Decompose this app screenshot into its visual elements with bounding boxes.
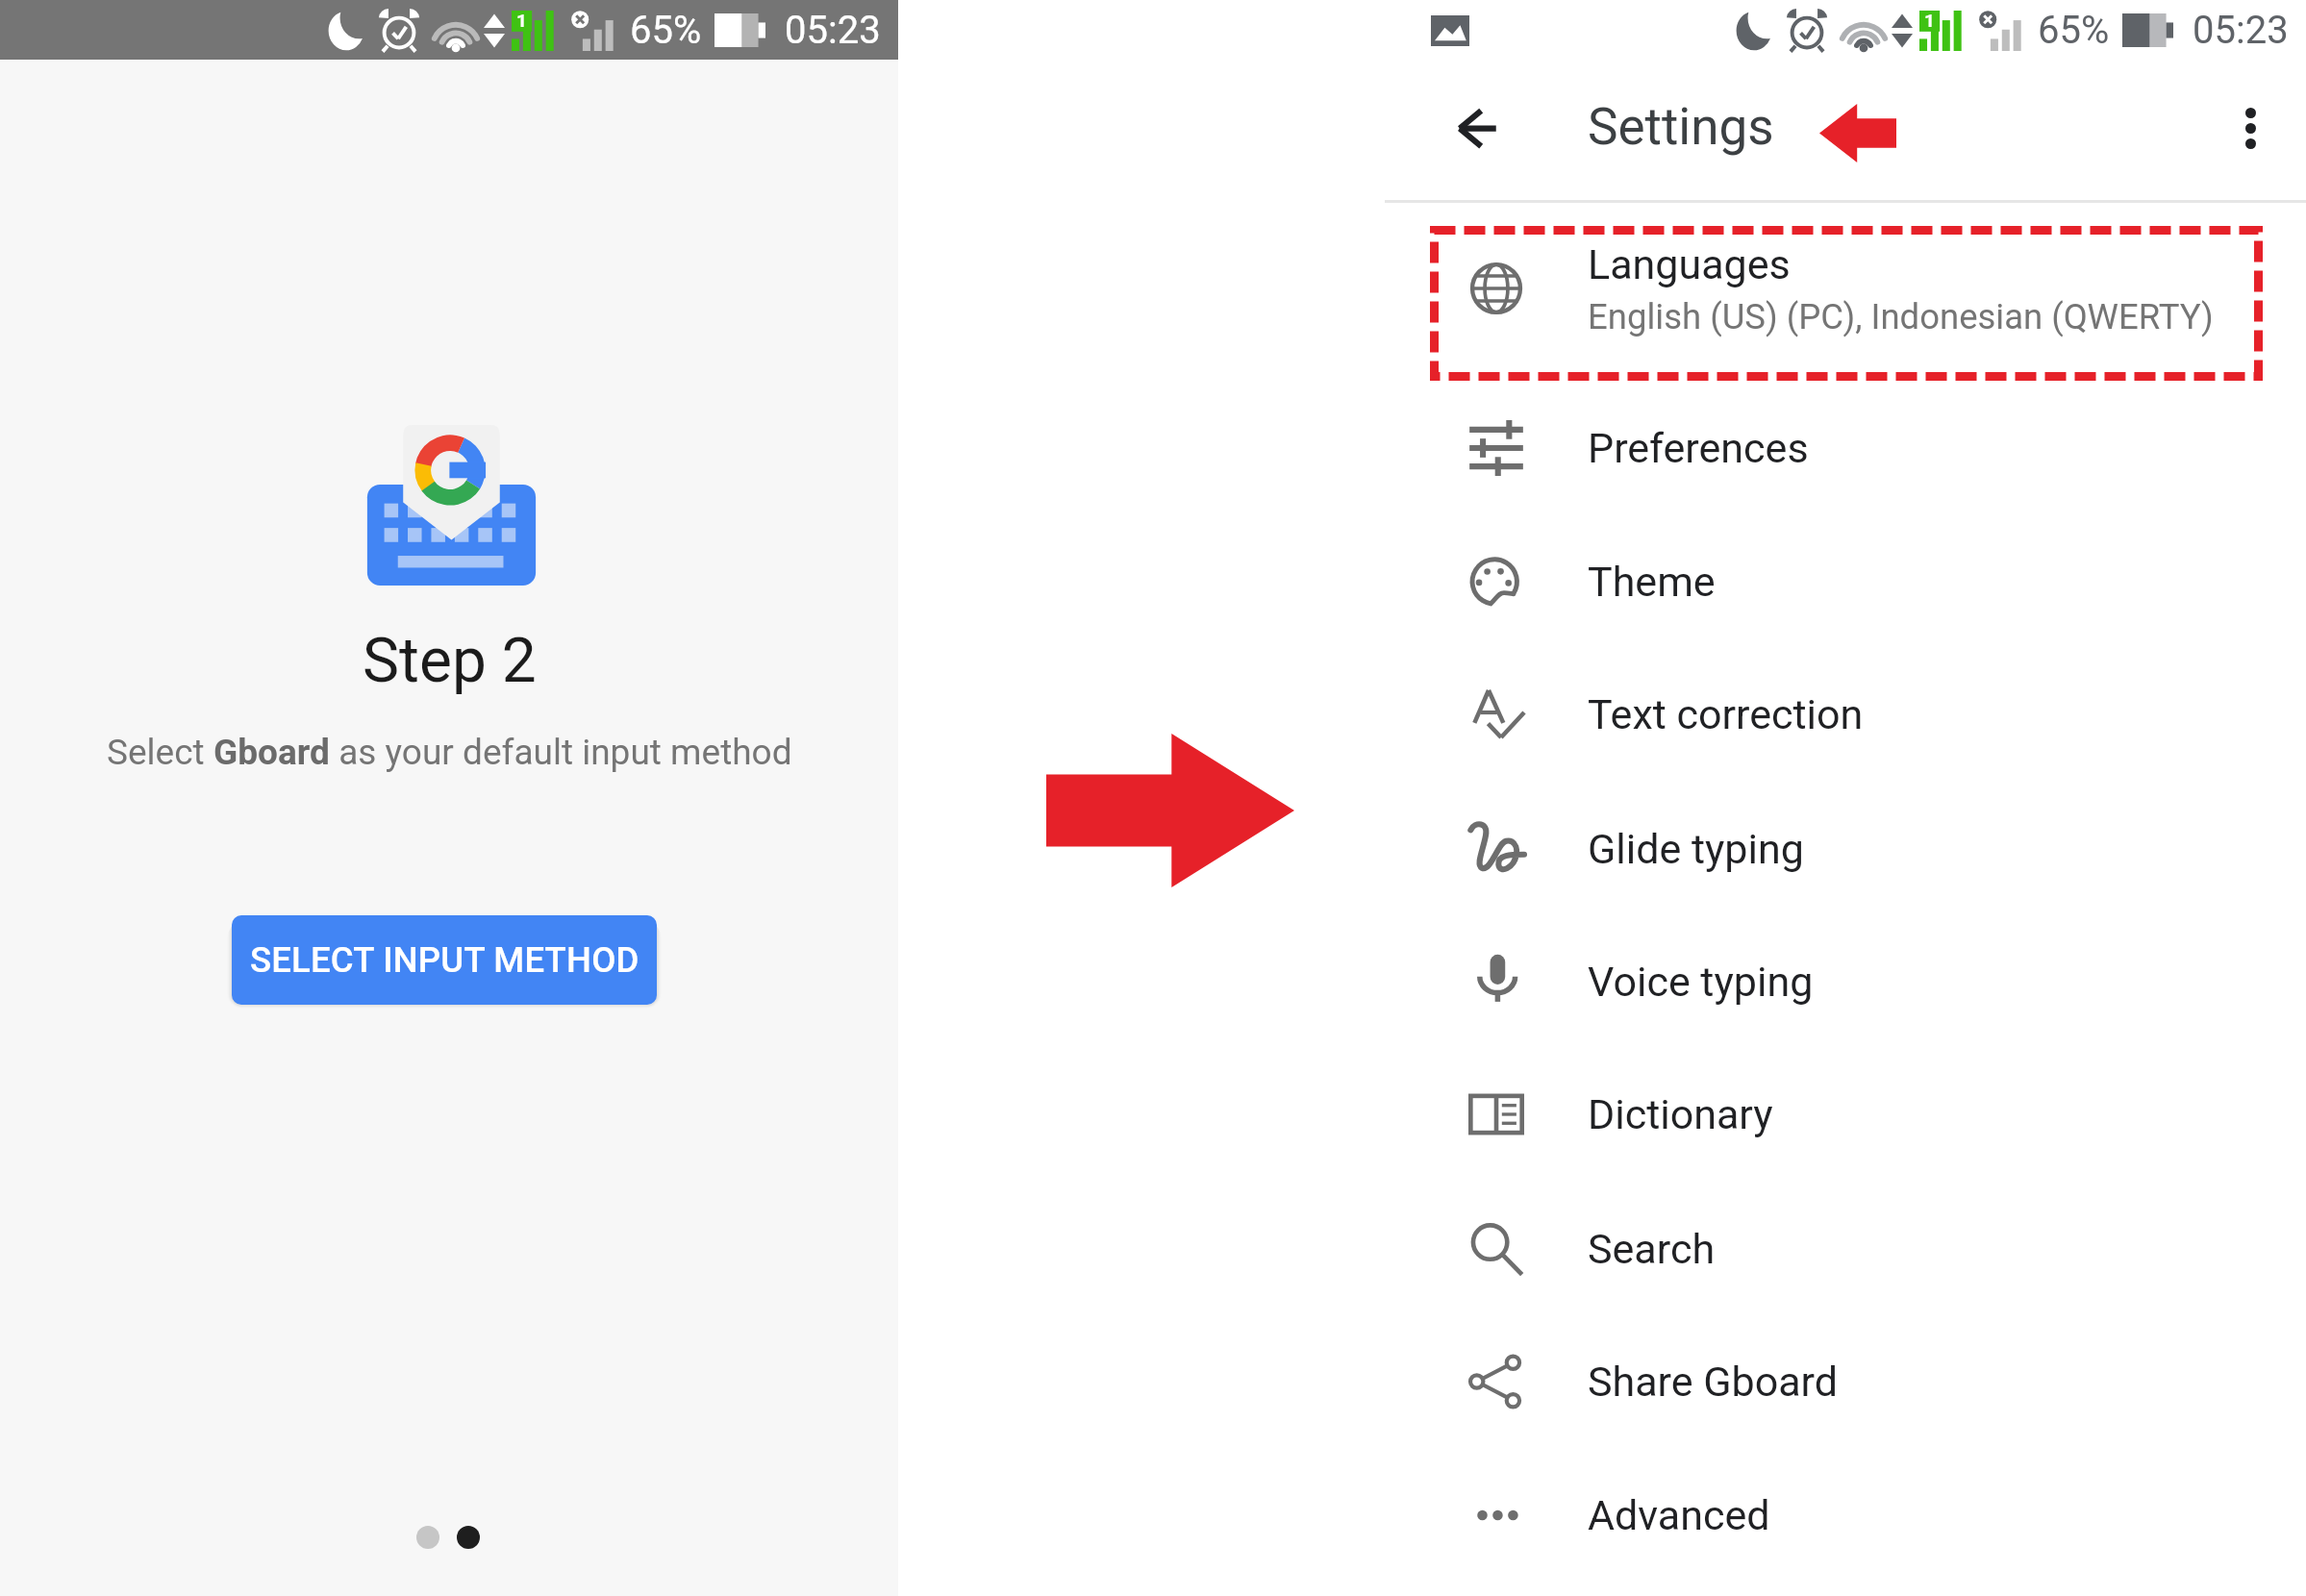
button[interactable]: Glide typing: [1385, 783, 2306, 915]
button[interactable]: Back: [1457, 109, 1497, 149]
staticText: Text correction: [1588, 690, 1864, 738]
staticText: Settings: [1588, 97, 1774, 157]
button[interactable]: Preferences: [1385, 382, 2306, 514]
button[interactable]: Theme: [1385, 515, 2306, 648]
staticText: 1: [1924, 10, 1935, 31]
staticText: Glide typing: [1588, 825, 1804, 873]
staticText: 65%: [630, 8, 702, 53]
staticText: 05:23: [785, 8, 881, 53]
staticText: English (US) (PC), Indonesian (QWERTY): [1588, 296, 2214, 337]
button[interactable]: More options: [2245, 108, 2256, 149]
staticText: Gboard: [213, 732, 330, 773]
staticText: Share Gboard: [1588, 1358, 1839, 1406]
staticText: Step 2: [363, 625, 537, 697]
staticText: Advanced: [1588, 1491, 1770, 1539]
staticText: 05:23: [2193, 8, 2289, 53]
staticText: 1: [516, 10, 527, 31]
staticText: SELECT INPUT METHOD: [250, 939, 639, 981]
staticText: as your default input method: [330, 732, 792, 773]
staticText: Search: [1588, 1225, 1716, 1273]
staticText: Dictionary: [1588, 1090, 1773, 1138]
staticText: 65%: [2038, 8, 2110, 53]
staticText: Voice typing: [1588, 958, 1814, 1006]
button[interactable]: Voice typing: [1385, 915, 2306, 1048]
staticText: Preferences: [1588, 424, 1809, 472]
button[interactable]: Text correction: [1385, 648, 2306, 781]
staticText: Select: [107, 732, 213, 773]
button[interactable]: SELECT INPUT METHOD: [232, 915, 657, 1005]
button[interactable]: Search: [1385, 1183, 2306, 1315]
staticText: Theme: [1588, 558, 1716, 606]
button[interactable]: Advanced: [1385, 1449, 2306, 1582]
button[interactable]: Share Gboard: [1385, 1315, 2306, 1448]
button[interactable]: Languages: [1385, 222, 2306, 355]
staticText: Languages: [1588, 240, 1791, 288]
button[interactable]: Dictionary: [1385, 1048, 2306, 1181]
